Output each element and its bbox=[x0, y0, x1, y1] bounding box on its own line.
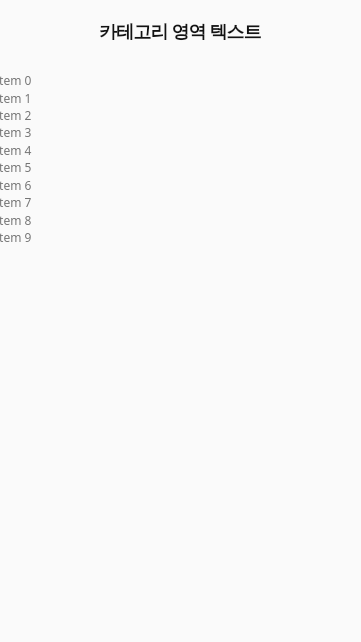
staticText: Item 5 bbox=[0, 159, 32, 175]
staticText: Item 4 bbox=[0, 142, 32, 158]
staticText: Item 8 bbox=[0, 212, 32, 228]
staticText: Item 9 bbox=[0, 229, 32, 245]
staticText: Item 0 bbox=[0, 72, 32, 88]
button[interactable]: Item 1 bbox=[0, 89, 356, 106]
staticText: Item 7 bbox=[0, 194, 32, 210]
button[interactable]: Item 9 bbox=[0, 228, 356, 245]
staticText: Item 2 bbox=[0, 107, 32, 123]
button[interactable]: Item 8 bbox=[0, 211, 356, 228]
staticText: Item 1 bbox=[0, 90, 32, 106]
staticText: 카테고리 영역 텍스트 bbox=[99, 19, 261, 44]
button[interactable]: Item 2 bbox=[0, 106, 356, 123]
button[interactable]: Item 7 bbox=[0, 193, 356, 210]
button[interactable]: Item 0 bbox=[0, 71, 356, 88]
button[interactable]: Item 3 bbox=[0, 123, 356, 140]
button[interactable]: Item 5 bbox=[0, 158, 356, 175]
staticText: Item 6 bbox=[0, 177, 32, 193]
button[interactable]: 카테고리 영역 텍스트 bbox=[0, 3, 360, 59]
staticText: Item 3 bbox=[0, 124, 32, 140]
button[interactable]: Item 6 bbox=[0, 176, 356, 193]
button[interactable]: Item 4 bbox=[0, 141, 356, 158]
